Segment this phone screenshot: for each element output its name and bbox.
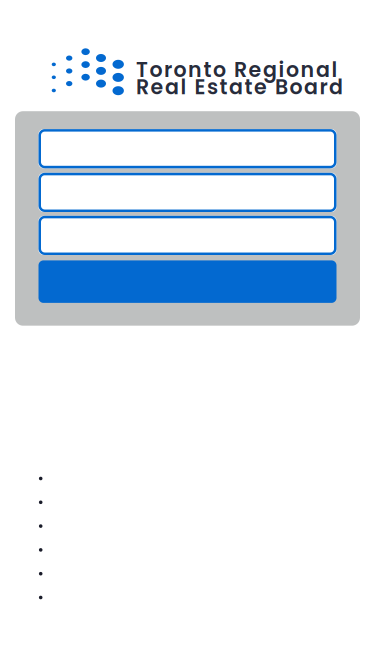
button[interactable] xyxy=(38,216,336,255)
button[interactable] xyxy=(38,173,336,212)
button[interactable] xyxy=(38,129,336,168)
button[interactable]: Sign in xyxy=(38,260,336,303)
staticText: Real Estate Board xyxy=(136,73,343,101)
staticText: Toronto Regional xyxy=(136,55,337,84)
